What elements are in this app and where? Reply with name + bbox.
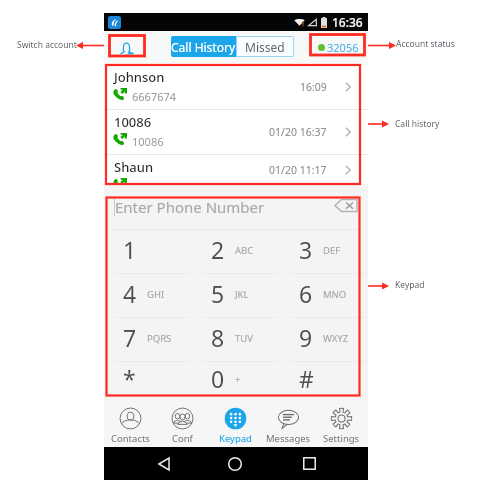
button[interactable]: Johnson bbox=[104, 65, 368, 109]
button[interactable]: 4 bbox=[104, 274, 192, 318]
button[interactable]: Home bbox=[228, 457, 242, 471]
staticText: MNO bbox=[323, 288, 347, 301]
button[interactable]: 0 bbox=[192, 362, 280, 400]
staticText: Johnson bbox=[114, 68, 165, 86]
staticText: 16:09 bbox=[300, 80, 327, 94]
staticText: 7 bbox=[123, 322, 137, 353]
button[interactable]: Call History bbox=[171, 36, 236, 57]
staticText: * bbox=[123, 363, 136, 394]
staticText: GHI bbox=[147, 288, 165, 301]
staticText: 5 bbox=[211, 278, 225, 309]
staticText: Keypad bbox=[219, 432, 252, 445]
staticText: PQRS bbox=[147, 332, 172, 345]
button[interactable]: Conf bbox=[156, 400, 209, 447]
staticText: Keypad bbox=[395, 279, 425, 291]
button[interactable]: # bbox=[280, 362, 368, 400]
button[interactable]: Backspace bbox=[335, 198, 357, 213]
staticText: 3 bbox=[299, 234, 313, 265]
button[interactable]: Switch account bbox=[111, 34, 141, 62]
staticText: 6667674 bbox=[132, 89, 177, 104]
staticText: Conf bbox=[172, 432, 193, 445]
button[interactable]: * bbox=[104, 362, 192, 400]
button[interactable]: Settings bbox=[315, 400, 368, 447]
button[interactable]: 10086 bbox=[104, 110, 368, 154]
staticText: Messages bbox=[266, 432, 311, 445]
button[interactable]: Contacts bbox=[104, 400, 156, 447]
staticText: WXYZ bbox=[323, 332, 349, 345]
staticText: 1 bbox=[123, 234, 137, 265]
staticText: 0 bbox=[211, 363, 225, 394]
button[interactable]: Back bbox=[158, 457, 170, 471]
button[interactable]: 6 bbox=[280, 274, 368, 318]
staticText: 6 bbox=[299, 278, 313, 309]
staticText: 8 bbox=[211, 322, 225, 353]
button[interactable]: Missed bbox=[236, 36, 294, 57]
button[interactable]: Messages bbox=[262, 400, 315, 447]
staticText: Settings bbox=[323, 432, 360, 445]
button[interactable]: 3 bbox=[280, 230, 368, 274]
button[interactable]: Recents bbox=[303, 457, 316, 470]
button[interactable]: 32056 bbox=[318, 40, 359, 55]
staticText: 32056 bbox=[327, 40, 359, 55]
staticText: 13411224578 bbox=[132, 179, 202, 184]
staticText: 16:36 bbox=[332, 14, 363, 30]
staticText: 01/20 11:17 bbox=[269, 163, 327, 177]
staticText: 10086 bbox=[114, 113, 152, 131]
staticText: Contacts bbox=[111, 432, 150, 445]
staticText: DEF bbox=[323, 244, 341, 257]
staticText: Account status bbox=[396, 38, 455, 50]
button[interactable]: 9 bbox=[280, 318, 368, 362]
button[interactable]: 8 bbox=[192, 318, 280, 362]
button[interactable]: 7 bbox=[104, 318, 192, 362]
staticText: 4 bbox=[123, 278, 137, 309]
staticText: ABC bbox=[235, 244, 254, 257]
button[interactable]: Keypad bbox=[209, 400, 262, 447]
staticText: 2 bbox=[211, 234, 225, 265]
button[interactable]: 2 bbox=[192, 230, 280, 274]
staticText: + bbox=[235, 373, 241, 386]
staticText: Enter Phone Number bbox=[115, 197, 265, 217]
staticText: 10086 bbox=[132, 134, 164, 149]
staticText: Call History bbox=[171, 39, 236, 55]
staticText: Switch account bbox=[17, 39, 77, 51]
staticText: JKL bbox=[235, 288, 249, 301]
staticText: 9 bbox=[299, 322, 313, 353]
staticText: # bbox=[299, 363, 314, 394]
staticText: TUV bbox=[235, 332, 253, 345]
staticText: Missed bbox=[245, 39, 285, 55]
staticText: Call history bbox=[395, 118, 440, 130]
staticText: 01/20 16:37 bbox=[269, 125, 327, 139]
button[interactable]: 1 bbox=[104, 230, 192, 274]
button[interactable]: Shaun bbox=[104, 155, 368, 184]
button[interactable]: 5 bbox=[192, 274, 280, 318]
staticText: Shaun bbox=[114, 158, 154, 176]
